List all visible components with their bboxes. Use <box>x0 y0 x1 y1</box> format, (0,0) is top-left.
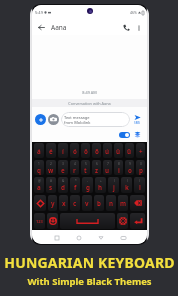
staticText: ú <box>105 147 110 155</box>
button[interactable]: ú <box>103 143 112 158</box>
staticText: + <box>139 147 143 155</box>
staticText: q <box>37 166 41 174</box>
button[interactable]: Call <box>120 21 133 34</box>
button[interactable]: Send SMS <box>131 114 144 125</box>
staticText: h <box>98 183 103 191</box>
staticText: x <box>62 199 66 207</box>
staticText: Aana <box>51 23 67 32</box>
button[interactable]: Back <box>35 21 48 34</box>
staticText: 7 <box>107 162 109 166</box>
staticText: ű <box>127 147 132 155</box>
button[interactable]: 4 <box>70 160 79 175</box>
button[interactable]: * <box>70 177 80 193</box>
button[interactable]: Enter <box>130 213 145 229</box>
button[interactable]: ) <box>121 177 132 193</box>
button[interactable]: Keyboard <box>112 232 134 243</box>
button[interactable]: í <box>58 143 68 158</box>
button[interactable]: - <box>82 177 93 193</box>
staticText: 0 <box>140 162 142 166</box>
staticText: & <box>62 179 65 183</box>
staticText: m <box>120 199 127 207</box>
button[interactable]: ( <box>108 177 119 193</box>
button[interactable]: ü <box>114 143 123 158</box>
staticText: 8 <box>118 162 120 166</box>
staticText: 6 <box>96 162 98 166</box>
button[interactable]: 7 <box>103 160 112 175</box>
staticText: r <box>73 166 76 174</box>
staticText: 5:49 <box>35 10 43 15</box>
staticText: 46% <box>130 10 137 15</box>
staticText: b <box>97 199 101 207</box>
staticText: s <box>49 183 53 191</box>
button[interactable]: b <box>94 195 104 211</box>
button[interactable]: 3 <box>58 160 68 175</box>
button[interactable]: 8 <box>114 160 123 175</box>
button[interactable]: Toggle SMS <box>119 132 130 138</box>
staticText: + <box>100 179 102 183</box>
staticText: j <box>113 183 115 191</box>
button[interactable]: Space <box>60 213 115 229</box>
button[interactable]: ó <box>70 143 79 158</box>
button[interactable]: 1 <box>34 160 44 175</box>
button[interactable]: m <box>118 195 128 211</box>
button[interactable]: 6 <box>92 160 101 175</box>
staticText: - <box>87 179 89 183</box>
staticText: í <box>62 147 64 155</box>
button[interactable]: Camera <box>48 114 59 125</box>
button[interactable]: ő <box>92 143 101 158</box>
staticText: l <box>139 183 141 191</box>
button[interactable]: 0 <box>136 160 145 175</box>
staticText: á <box>37 147 41 155</box>
button[interactable]: Emoji <box>47 213 58 229</box>
staticText: With Simple Black Themes <box>27 275 152 288</box>
button[interactable]: Numbers <box>34 213 45 229</box>
staticText: 1 <box>38 162 40 166</box>
button[interactable]: Text message <box>61 112 130 127</box>
staticText: n <box>109 199 114 207</box>
button[interactable]: y <box>48 195 57 211</box>
staticText: from Mobilink <box>64 120 91 125</box>
staticText: g <box>86 183 90 191</box>
button[interactable]: Settings <box>117 213 128 229</box>
button[interactable]: Recents <box>46 232 68 243</box>
staticText: / <box>139 179 141 183</box>
button[interactable]: # <box>46 177 56 193</box>
button[interactable]: x <box>59 195 68 211</box>
button[interactable]: Add attachment <box>35 114 46 125</box>
staticText: a <box>37 183 41 191</box>
staticText: i <box>118 166 120 174</box>
button[interactable]: n <box>106 195 116 211</box>
staticText: v <box>85 199 89 207</box>
staticText: 2 <box>50 162 52 166</box>
staticText: Conversation with Aana <box>68 101 111 106</box>
button[interactable]: ű <box>125 143 134 158</box>
button[interactable]: Back <box>90 232 112 243</box>
staticText: t <box>84 166 87 174</box>
staticText: z <box>95 166 99 174</box>
button[interactable]: @ <box>34 177 44 193</box>
button[interactable]: Shift <box>34 195 46 211</box>
staticText: ü <box>116 147 121 155</box>
button[interactable]: é <box>46 143 56 158</box>
button[interactable]: 2 <box>46 160 56 175</box>
button[interactable]: + <box>95 177 106 193</box>
staticText: 9 <box>129 162 131 166</box>
staticText: f <box>74 183 77 191</box>
button[interactable]: More options <box>133 22 144 33</box>
button[interactable]: c <box>70 195 80 211</box>
button[interactable]: Home <box>68 232 90 243</box>
button[interactable]: ö <box>81 143 90 158</box>
button[interactable]: & <box>58 177 68 193</box>
button[interactable]: Backspace <box>130 195 145 211</box>
button[interactable]: v <box>82 195 92 211</box>
button[interactable]: Layers <box>133 130 142 139</box>
staticText: c <box>73 199 77 207</box>
button[interactable]: 9 <box>125 160 134 175</box>
button[interactable]: á <box>34 143 44 158</box>
button[interactable]: / <box>134 177 145 193</box>
button[interactable]: 5 <box>81 160 90 175</box>
staticText: @ <box>38 179 41 183</box>
staticText: ő <box>95 147 99 155</box>
button[interactable]: + <box>136 143 145 158</box>
staticText: u <box>105 166 110 174</box>
